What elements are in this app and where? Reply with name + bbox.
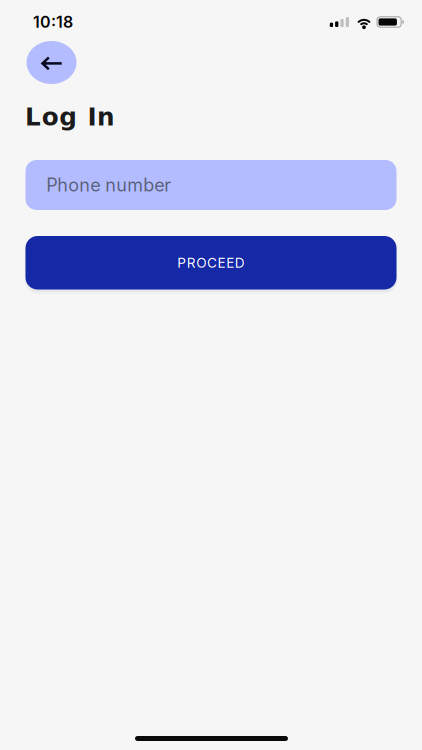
staticText: Log In xyxy=(25,103,125,131)
staticText: Phone number xyxy=(46,174,171,196)
staticText: PROCEED xyxy=(177,254,249,271)
staticText: 10:18 xyxy=(33,12,73,32)
button[interactable]: Back xyxy=(26,41,76,84)
button[interactable]: PROCEED xyxy=(21,232,400,294)
